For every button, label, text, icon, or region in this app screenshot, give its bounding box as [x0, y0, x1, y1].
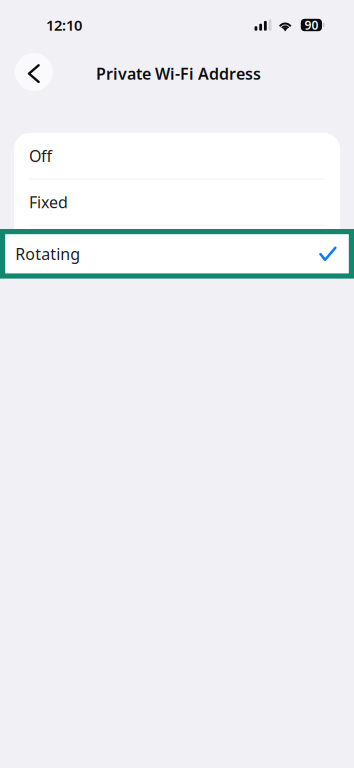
- button[interactable]: Back: [15, 53, 53, 91]
- staticText: Fixed: [29, 191, 68, 213]
- staticText: Rotating: [15, 243, 80, 264]
- button[interactable]: Rotating: [0, 229, 354, 279]
- staticText: Off: [29, 145, 52, 166]
- staticText: 90: [304, 17, 318, 33]
- button[interactable]: Off: [14, 133, 340, 179]
- button[interactable]: Fixed: [14, 179, 340, 226]
- staticText: 12:10: [46, 15, 82, 35]
- staticText: Private Wi-Fi Address: [96, 63, 261, 84]
